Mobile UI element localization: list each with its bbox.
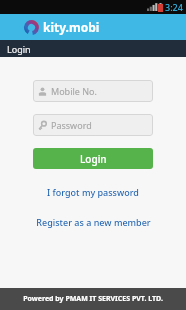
staticText: Login — [80, 152, 107, 166]
staticText: Login — [7, 43, 31, 55]
staticText: kity.mobi — [43, 19, 100, 35]
staticText: I forgot my password — [47, 186, 139, 198]
staticText: 3:24 — [165, 1, 183, 13]
staticText: Register as a new member — [36, 216, 151, 228]
button[interactable]: I forgot my password — [41, 185, 145, 199]
button[interactable]: Login — [0, 40, 186, 57]
button[interactable]: Password — [33, 114, 153, 136]
staticText: Password — [51, 119, 92, 131]
button[interactable]: Register as a new member — [30, 215, 157, 229]
staticText: Mobile No. — [51, 85, 97, 97]
button[interactable]: Mobile No. — [33, 80, 153, 102]
button[interactable]: Login — [33, 148, 153, 169]
staticText: Powered by PMAM IT SERVICES PVT. LTD. — [23, 294, 163, 304]
